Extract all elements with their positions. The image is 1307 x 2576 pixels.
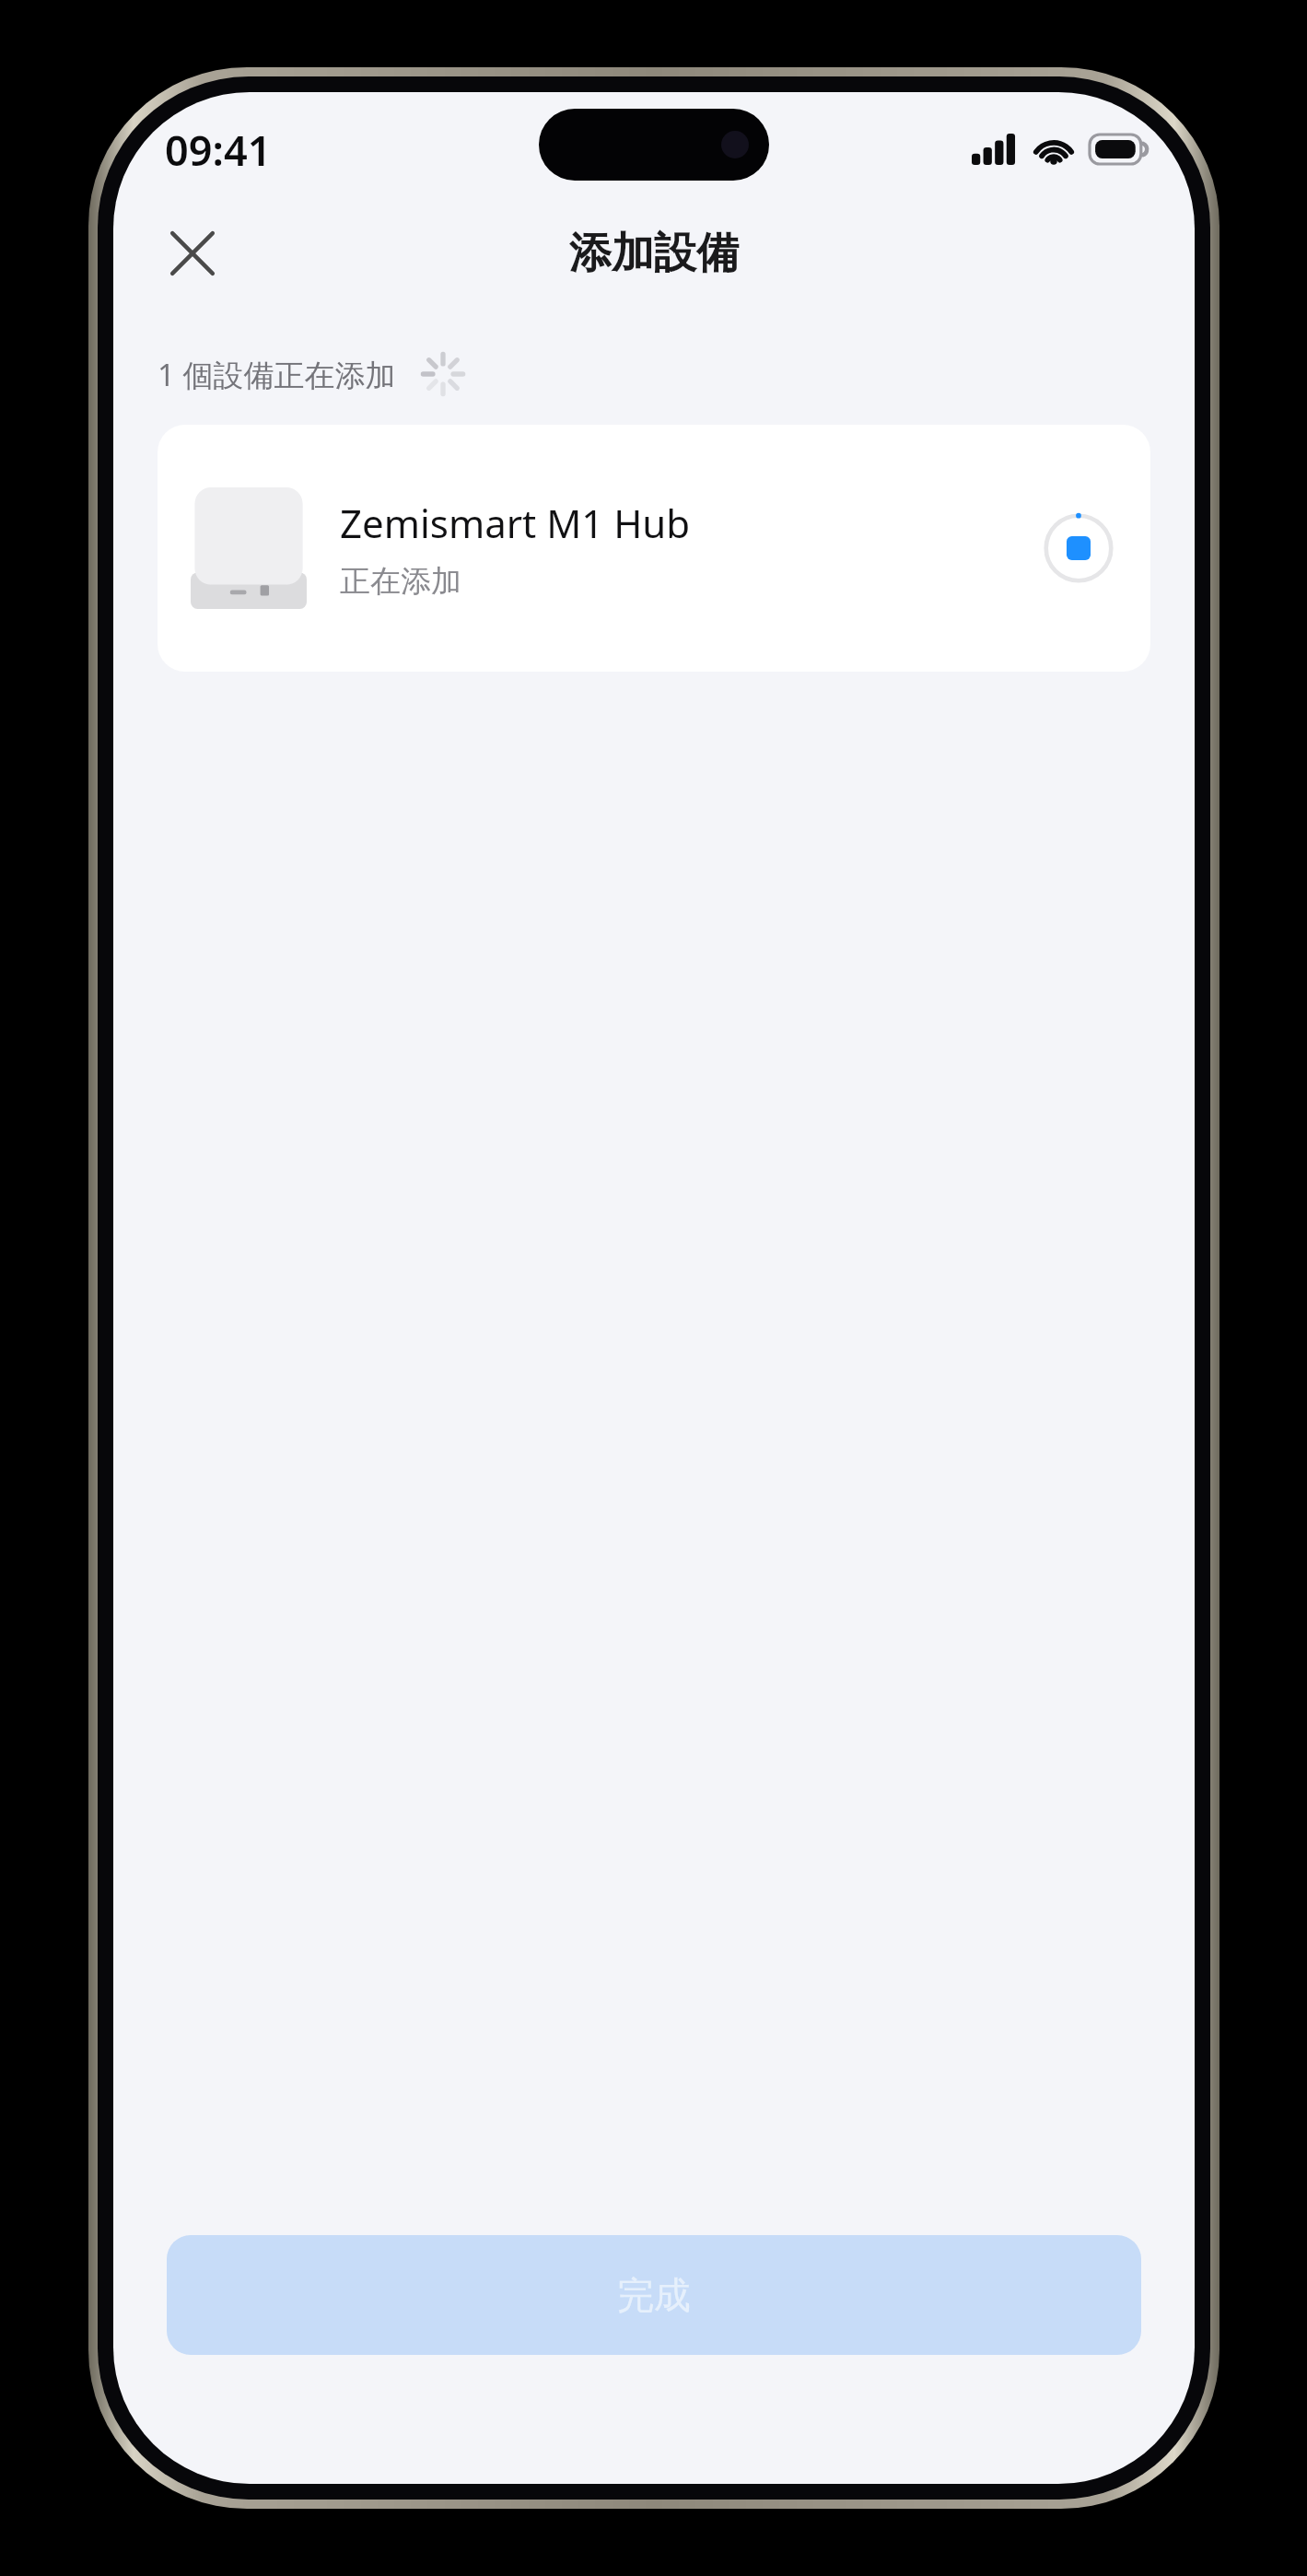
staticText: 09:41 xyxy=(165,122,272,178)
staticText: Zemismart M1 Hub xyxy=(340,497,691,549)
staticText: 正在添加 xyxy=(340,562,461,601)
button[interactable]: Close xyxy=(148,209,237,298)
staticText: 添加設備 xyxy=(569,227,739,280)
button[interactable]: Stop adding device xyxy=(1040,509,1117,587)
button[interactable]: 完成 xyxy=(167,2235,1141,2355)
staticText: 完成 xyxy=(617,2272,691,2318)
button[interactable]: Zemismart M1 Hub xyxy=(158,425,1150,672)
staticText: 1 個設備正在添加 xyxy=(158,354,396,395)
